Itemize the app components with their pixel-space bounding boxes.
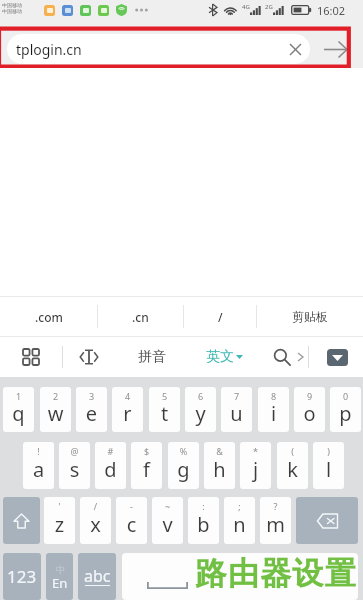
button[interactable]: / [80,497,111,544]
staticText: b [188,511,219,538]
button[interactable]: : [188,497,219,544]
staticText: & [204,445,235,457]
staticText: 7 [221,390,252,402]
staticText: / [218,309,223,325]
button[interactable]: & [204,442,235,489]
staticText: $ [131,445,162,457]
staticText: En [52,574,68,592]
button[interactable]: $ [131,442,162,489]
staticText: s [59,456,90,483]
staticText: 0 [330,390,361,402]
staticText: 2G [265,3,273,11]
staticText: ? [260,500,291,512]
staticText: 4G [242,3,250,11]
button[interactable]: .com [0,297,97,336]
staticText: : [188,500,219,512]
staticText: r [112,400,143,427]
button[interactable]: ; [224,497,255,544]
button[interactable]: Switch language [46,553,73,600]
button[interactable]: 5 [149,387,180,432]
staticText: 1 [3,390,34,402]
button[interactable]: Numbers [3,553,41,600]
staticText: - [116,500,147,512]
staticText: abc [84,565,111,587]
staticText: 拼音 [138,348,166,366]
button[interactable]: ? [260,497,291,544]
button[interactable]: ) [313,442,344,489]
button[interactable]: 拼音 [129,337,175,377]
staticText: ' [44,500,75,512]
staticText: 2 [40,390,71,402]
button[interactable]: Backspace [296,497,358,544]
staticText: 中国移动 [2,2,22,8]
staticText: ! [23,445,54,457]
button[interactable]: 1 [3,387,34,432]
button[interactable]: 6 [185,387,216,432]
staticText: @ [59,445,90,457]
staticText: / [80,500,111,512]
staticText: 剪贴板 [292,309,328,324]
staticText: 中 [56,564,65,575]
button[interactable]: % [168,442,199,489]
button[interactable]: * [240,442,271,489]
staticText: 路由器设置 [195,554,356,593]
staticText: l [313,456,344,483]
staticText: j [240,456,271,483]
staticText: ; [224,500,255,512]
staticText: # [95,445,126,457]
button[interactable]: ! [23,442,54,489]
staticText: ) [313,445,344,457]
button[interactable]: 剪贴板 [257,297,363,336]
button[interactable]: ( [277,442,308,489]
button[interactable]: Search [268,337,296,377]
staticText: 3 [76,390,107,402]
staticText: d [95,456,126,483]
staticText: y [185,400,216,427]
button[interactable]: Shift [3,497,40,544]
button[interactable]: tplogin.cn [7,34,310,64]
staticText: 6 [185,390,216,402]
button[interactable]: .cn [98,297,183,336]
button[interactable]: Keyboard layouts [14,337,48,377]
staticText: z [44,511,75,538]
button[interactable]: Letters [78,553,116,600]
staticText: q [3,400,34,427]
staticText: i [258,400,289,427]
staticText: f [131,456,162,483]
staticText: g [168,456,199,483]
staticText: 5 [149,390,180,402]
button[interactable]: 4 [112,387,143,432]
staticText: 4 [112,390,143,402]
staticText: 中国移动 [2,8,22,14]
button[interactable]: 0 [330,387,361,432]
button[interactable]: 9 [294,387,325,432]
staticText: .com [35,309,63,325]
button[interactable]: - [116,497,147,544]
staticText: 9 [294,390,325,402]
staticText: ( [277,445,308,457]
button[interactable]: Hide keyboard [327,349,348,366]
button[interactable]: ' [44,497,75,544]
button[interactable]: 英文 [198,337,250,377]
staticText: k [277,456,308,483]
button[interactable]: @ [59,442,90,489]
staticText: p [330,400,361,427]
staticText: 123 [7,565,37,588]
button[interactable]: Clear [283,34,307,64]
button[interactable]: / [184,297,256,336]
staticText: x [80,511,111,538]
button[interactable]: 2 [40,387,71,432]
button[interactable]: Go [318,34,354,64]
staticText: v [152,511,183,538]
button[interactable]: Space [122,553,358,600]
staticText: tplogin.cn [16,40,82,59]
button[interactable]: 3 [76,387,107,432]
staticText: 8 [258,390,289,402]
staticText: * [240,445,271,457]
staticText: o [294,400,325,427]
button[interactable]: # [95,442,126,489]
button[interactable]: 7 [221,387,252,432]
button[interactable]: ~ [152,497,183,544]
button[interactable]: Move cursor [72,337,106,377]
button[interactable]: 8 [258,387,289,432]
